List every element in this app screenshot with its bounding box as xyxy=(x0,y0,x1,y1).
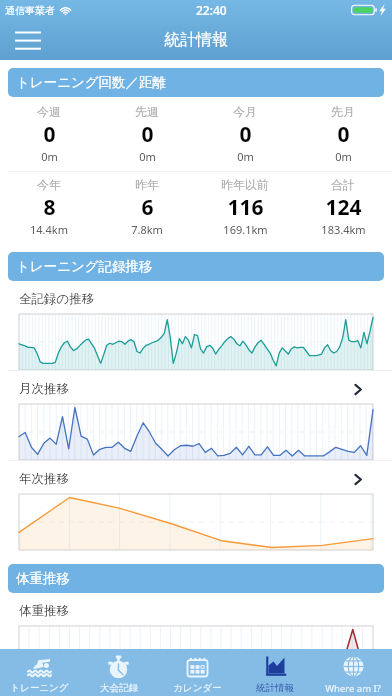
staticText: 今週 xyxy=(37,104,61,119)
staticText: 0 xyxy=(141,120,154,149)
staticText: 先週 xyxy=(135,104,159,119)
staticText: 通信事業者 xyxy=(5,4,55,17)
staticText: 昨年 xyxy=(135,177,159,192)
button[interactable]: 月次推移 xyxy=(0,371,392,460)
staticText: トレーニング記録推移 xyxy=(16,258,153,275)
staticText: 0m xyxy=(41,149,58,164)
staticText: 8 xyxy=(43,193,56,222)
staticText: 昨年以前 xyxy=(221,177,269,192)
button[interactable]: カレンダー xyxy=(158,649,236,696)
button[interactable]: トレーニング xyxy=(0,649,79,696)
staticText: 22:40 xyxy=(196,2,227,18)
staticText: 全記録の推移 xyxy=(19,291,95,307)
staticText: 0m xyxy=(139,149,156,164)
staticText: 0 xyxy=(337,120,350,149)
staticText: トレーニング xyxy=(10,682,69,694)
staticText: 183.4km xyxy=(321,222,366,237)
staticText: 先月 xyxy=(331,104,355,119)
staticText: トレーニング回数／距離 xyxy=(16,74,167,91)
staticText: 14.4km xyxy=(30,222,68,237)
staticText: 116 xyxy=(227,193,264,222)
staticText: 月次推移 xyxy=(19,381,69,397)
staticText: 年次推移 xyxy=(19,471,69,487)
staticText: 0 xyxy=(43,120,56,149)
staticText: 統計情報 xyxy=(164,30,228,50)
staticText: 124 xyxy=(325,193,362,222)
button[interactable]: Where am I? xyxy=(314,649,392,696)
staticText: 合計 xyxy=(331,177,355,192)
staticText: 0 xyxy=(239,120,252,149)
staticText: 0m xyxy=(335,149,352,164)
staticText: カレンダー xyxy=(173,682,222,694)
staticText: 今年 xyxy=(37,177,61,192)
staticText: 体重推移 xyxy=(19,603,69,619)
staticText: 体重推移 xyxy=(16,570,70,587)
button[interactable]: Menu xyxy=(11,23,45,57)
staticText: 169.1km xyxy=(223,222,268,237)
button[interactable]: 年次推移 xyxy=(0,461,392,550)
staticText: 6 xyxy=(141,193,154,222)
staticText: 0m xyxy=(237,149,254,164)
staticText: 統計情報 xyxy=(256,682,294,694)
staticText: Where am I? xyxy=(325,682,381,695)
staticText: 今月 xyxy=(233,104,257,119)
staticText: 大会記録 xyxy=(100,682,138,694)
staticText: 7.8km xyxy=(131,222,163,237)
button[interactable]: 大会記録 xyxy=(79,649,158,696)
button[interactable]: 統計情報 xyxy=(236,649,314,696)
